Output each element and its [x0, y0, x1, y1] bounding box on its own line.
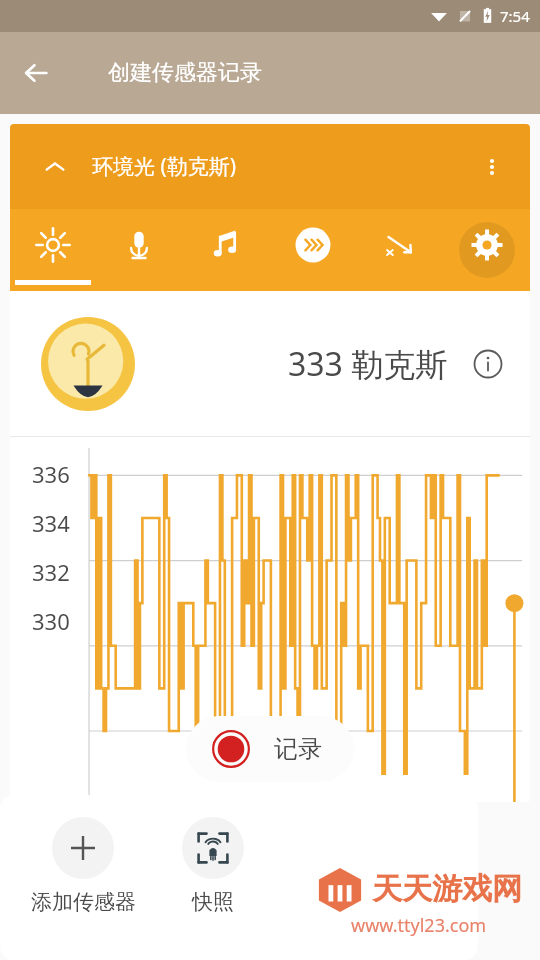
- staticText: 创建传感器记录: [108, 59, 262, 87]
- button[interactable]: Settings: [443, 209, 530, 291]
- staticText: 快照: [192, 889, 234, 915]
- staticText: 天天游戏网: [372, 870, 522, 908]
- button[interactable]: Back: [12, 49, 60, 97]
- button[interactable]: Sound: [182, 209, 269, 291]
- button[interactable]: Accelerometer: [356, 209, 443, 291]
- staticText: 332: [32, 557, 70, 587]
- button[interactable]: More options: [470, 145, 514, 189]
- other: Add sensor: [52, 817, 114, 879]
- staticText: 333 勒克斯: [288, 342, 448, 386]
- staticText: 334: [32, 508, 70, 538]
- staticText: www.ttyl23.com: [351, 913, 487, 938]
- staticText: 336: [32, 459, 70, 489]
- staticText: 330: [32, 606, 70, 636]
- button[interactable]: Snapshot: [148, 813, 278, 919]
- button[interactable]: Info: [468, 344, 508, 384]
- button[interactable]: 记录: [186, 716, 354, 782]
- staticText: 环境光 (勒克斯): [92, 152, 237, 181]
- button[interactable]: 环境光 (勒克斯): [10, 124, 530, 209]
- staticText: 记录: [274, 734, 322, 764]
- button[interactable]: Add sensor: [18, 813, 148, 919]
- other: Snapshot: [182, 817, 244, 879]
- staticText: 添加传感器: [31, 889, 136, 915]
- button[interactable]: Microphone: [96, 209, 182, 291]
- staticText: 7:54: [500, 6, 530, 26]
- button[interactable]: Motion: [269, 209, 356, 291]
- button[interactable]: Light sensor: [10, 209, 96, 291]
